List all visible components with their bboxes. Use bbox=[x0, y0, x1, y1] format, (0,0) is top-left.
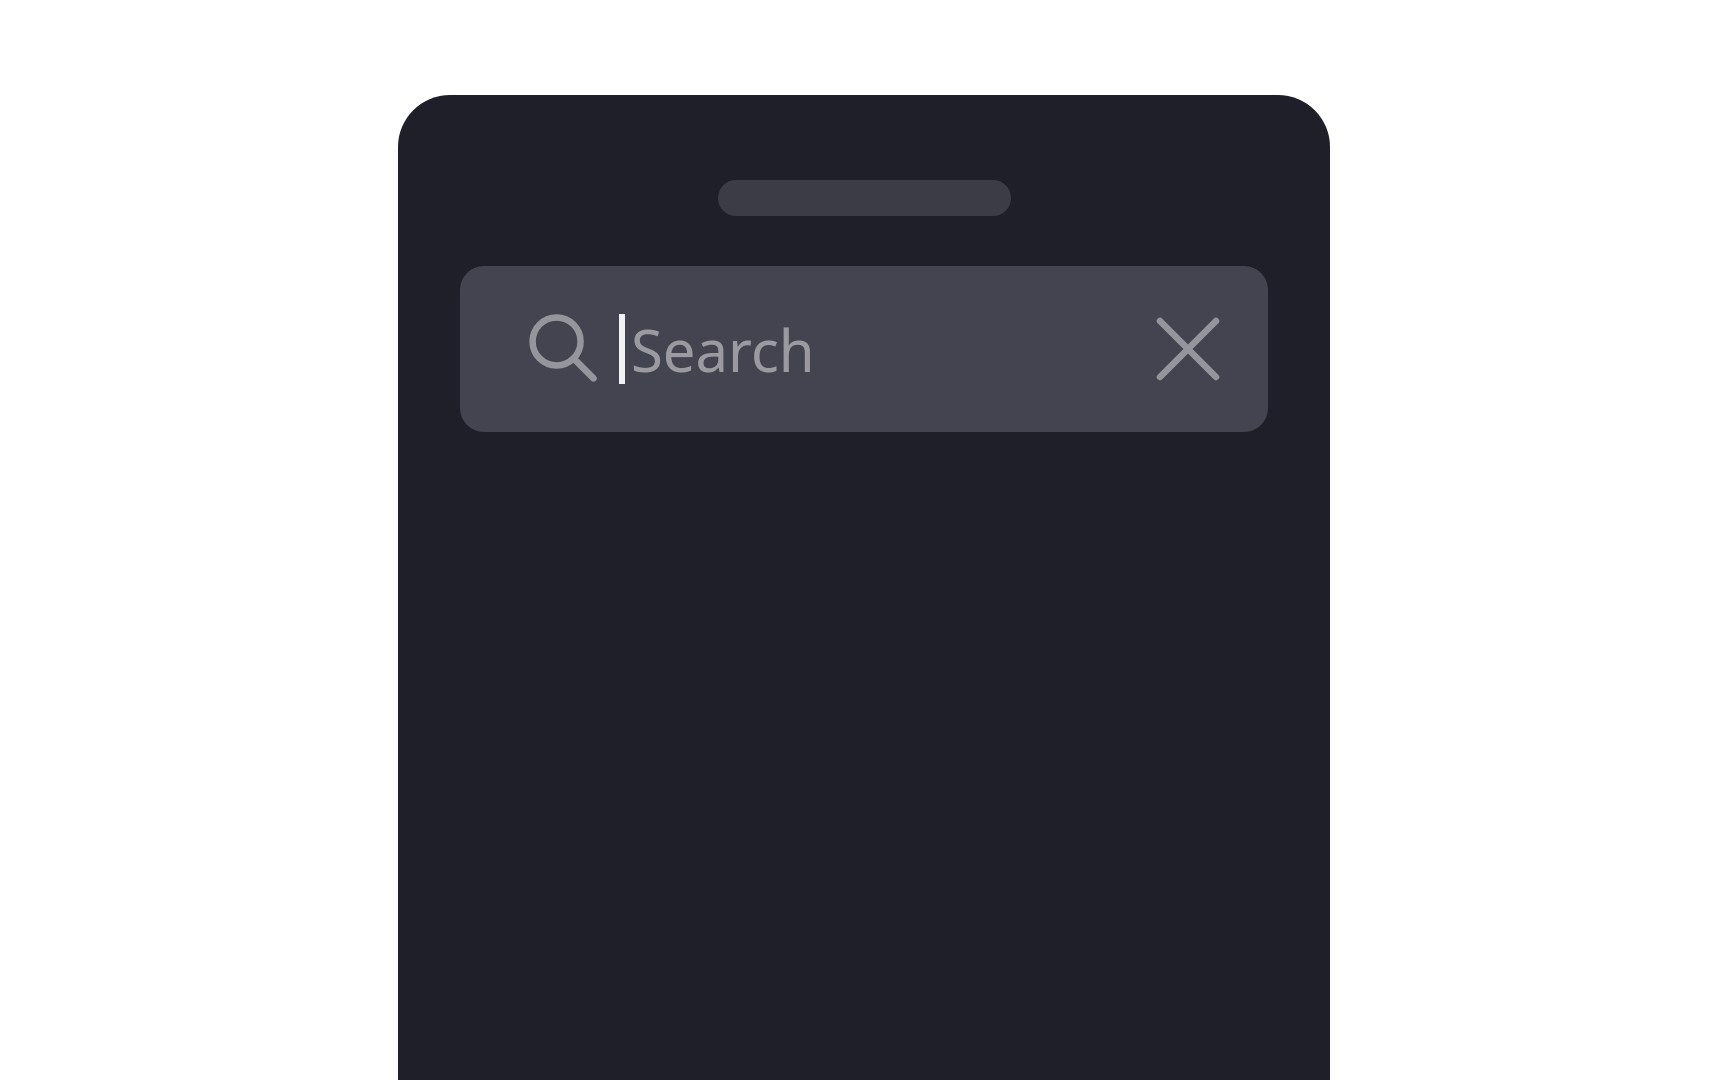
button[interactable]: Clear search bbox=[1146, 307, 1230, 391]
button[interactable]: Search bbox=[460, 266, 1268, 432]
staticText: Search bbox=[631, 310, 815, 389]
other: Search bbox=[522, 311, 598, 387]
